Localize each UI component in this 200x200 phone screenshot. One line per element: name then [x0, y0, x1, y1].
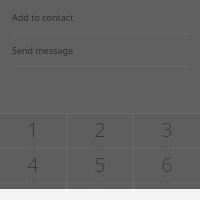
staticText: 8 [94, 186, 106, 192]
staticText: Send message [12, 44, 74, 56]
button[interactable]: Add to contact [0, 1, 200, 33]
staticText: 1 [27, 116, 39, 143]
button[interactable]: 4 [0, 148, 66, 183]
staticText: 7 [27, 186, 39, 192]
staticText: 6 [161, 151, 173, 178]
staticText: 9 [161, 186, 173, 192]
staticText: 3 [161, 116, 173, 143]
button[interactable]: 6 [133, 148, 200, 183]
button[interactable]: 2 [66, 113, 133, 148]
staticText: 4 [27, 151, 39, 178]
button[interactable]: Send message [0, 34, 200, 66]
button[interactable]: 1 [0, 113, 66, 148]
staticText: 5 [94, 151, 106, 178]
button[interactable]: 5 [66, 148, 133, 183]
button[interactable]: 3 [133, 113, 200, 148]
staticText: Add to contact [12, 11, 74, 23]
staticText: 2 [94, 116, 106, 143]
